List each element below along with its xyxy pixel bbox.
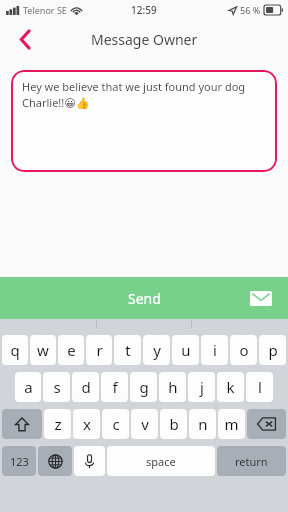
button[interactable]: t — [114, 335, 141, 365]
button[interactable]: j — [188, 372, 215, 402]
staticText: return — [235, 454, 268, 469]
button[interactable]: w — [30, 335, 56, 365]
button[interactable]: d — [72, 372, 99, 402]
button[interactable]: n — [189, 409, 216, 439]
staticText: l — [258, 377, 262, 397]
staticText: 12:59 — [131, 3, 157, 17]
button[interactable]: r — [86, 335, 112, 365]
staticText: q — [10, 340, 20, 360]
staticText: 123 — [10, 454, 29, 469]
staticText: d — [81, 377, 91, 397]
button[interactable]: y — [143, 335, 170, 365]
staticText: Send — [128, 289, 161, 308]
button[interactable]: x — [73, 409, 100, 439]
button[interactable]: p — [259, 335, 286, 365]
button[interactable]: a — [15, 372, 41, 402]
button[interactable]: Delete — [247, 409, 286, 439]
staticText: r — [96, 340, 103, 360]
staticText: c — [112, 414, 120, 434]
staticText: w — [37, 340, 49, 360]
button[interactable]: m — [218, 409, 245, 439]
other: Send message — [250, 291, 272, 306]
staticText: i — [213, 340, 217, 360]
staticText: m — [224, 414, 239, 434]
staticText: o — [239, 340, 249, 360]
button[interactable]: l — [246, 372, 273, 402]
button[interactable]: q — [2, 335, 28, 365]
button[interactable]: g — [130, 372, 157, 402]
button[interactable]: Switch keyboard — [38, 446, 72, 476]
button[interactable]: f — [101, 372, 128, 402]
button[interactable]: space — [107, 446, 215, 476]
staticText: a — [24, 377, 33, 397]
staticText: t — [125, 340, 131, 360]
button[interactable]: o — [230, 335, 257, 365]
staticText: g — [139, 377, 149, 397]
button[interactable]: k — [217, 372, 244, 402]
staticText: u — [181, 340, 191, 360]
button[interactable]: h — [159, 372, 186, 402]
staticText: Hey we believe that we just found your d… — [22, 79, 266, 110]
staticText: s — [53, 377, 61, 397]
staticText: j — [200, 377, 204, 397]
staticText: space — [146, 454, 176, 469]
button[interactable]: Numbers — [2, 446, 36, 476]
staticText: x — [83, 414, 91, 434]
staticText: f — [112, 377, 118, 397]
button[interactable]: Hey we believe that we just found your d… — [11, 70, 277, 172]
button[interactable]: e — [58, 335, 84, 365]
staticText: n — [198, 414, 208, 434]
button[interactable]: return — [217, 446, 286, 476]
staticText: p — [268, 340, 278, 360]
button[interactable]: Back — [8, 22, 42, 56]
staticText: Telenor SE — [23, 4, 67, 16]
button[interactable]: b — [160, 409, 187, 439]
staticText: v — [141, 414, 149, 434]
button[interactable]: s — [43, 372, 70, 402]
button[interactable]: u — [172, 335, 199, 365]
staticText: e — [67, 340, 76, 360]
staticText: y — [153, 340, 161, 360]
button[interactable]: v — [131, 409, 158, 439]
staticText: h — [168, 377, 178, 397]
button[interactable]: z — [44, 409, 71, 439]
staticText: z — [54, 414, 62, 434]
staticText: k — [226, 377, 235, 397]
button[interactable]: c — [102, 409, 129, 439]
button[interactable]: i — [201, 335, 228, 365]
staticText: 56 % — [240, 4, 261, 16]
button[interactable]: Shift — [2, 409, 42, 439]
staticText: b — [169, 414, 179, 434]
staticText: Message Owner — [91, 30, 198, 49]
button[interactable]: Send — [0, 277, 288, 319]
button[interactable]: Dictate — [74, 446, 105, 476]
